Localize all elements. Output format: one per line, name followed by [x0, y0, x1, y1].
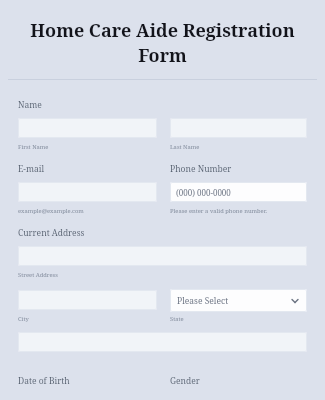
button[interactable] — [18, 290, 157, 310]
button[interactable] — [18, 182, 157, 202]
staticText: (000) 000-0000 — [176, 187, 231, 198]
staticText: Street Address — [18, 271, 58, 279]
button[interactable] — [18, 118, 157, 138]
staticText: City — [18, 315, 29, 323]
button[interactable] — [18, 246, 307, 266]
staticText: Please Select — [177, 295, 229, 307]
staticText: Last Name — [170, 143, 200, 151]
button[interactable] — [170, 118, 307, 138]
staticText: Name — [18, 99, 42, 111]
other: Open state dropdown — [290, 296, 300, 306]
staticText: Gender — [170, 375, 200, 387]
staticText: Home Care Aide Registration Form — [10, 18, 315, 68]
staticText: example@example.com — [18, 207, 84, 215]
staticText: E-mail — [18, 163, 45, 175]
button[interactable]: (000) 000-0000 — [170, 182, 307, 202]
staticText: Current Address — [18, 227, 85, 239]
staticText: State — [170, 315, 184, 323]
staticText: Date of Birth — [18, 375, 170, 387]
staticText: Please enter a valid phone number. — [170, 207, 268, 215]
button[interactable]: Please Select — [170, 289, 307, 312]
staticText: Phone Number — [170, 163, 232, 175]
staticText: First Name — [18, 143, 49, 151]
button[interactable] — [18, 332, 307, 352]
